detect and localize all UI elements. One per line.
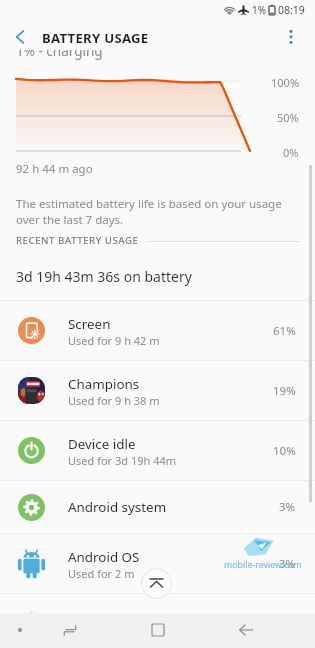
staticText: Device idle	[68, 435, 136, 453]
button[interactable]: More options	[277, 23, 305, 51]
button[interactable]: Recents	[143, 615, 173, 645]
staticText: RECENT BATTERY USAGE	[16, 234, 139, 247]
staticText: Screen	[68, 315, 111, 333]
button[interactable]: Hide keyboard	[5, 615, 35, 645]
staticText: Used for 3d 19h 44m	[68, 453, 177, 468]
staticText: 61%	[273, 323, 296, 339]
button[interactable]: Champions	[0, 361, 315, 420]
staticText: 19%	[273, 383, 296, 399]
staticText: 3%	[279, 499, 296, 515]
staticText: Champions	[68, 375, 140, 393]
staticText: 1%	[252, 3, 267, 17]
button[interactable]: Back	[6, 23, 34, 51]
staticText: 10%	[273, 443, 296, 459]
staticText: 1% - charging	[16, 42, 103, 60]
staticText: 92 h 44 m ago	[16, 161, 93, 177]
button[interactable]: Screen	[0, 301, 315, 360]
staticText: 3d 19h 43m 36s on battery	[16, 267, 192, 286]
staticText: Used for 9 h 38 m	[68, 393, 160, 408]
button[interactable]: Google Play services	[0, 594, 315, 646]
button[interactable]: Scroll to top	[141, 568, 172, 599]
staticText: Used for 2 m	[68, 566, 135, 581]
button[interactable]: Android OS	[0, 534, 315, 593]
button[interactable]: Back	[231, 615, 261, 645]
staticText: Google Play services	[68, 611, 197, 629]
staticText: 0%	[283, 145, 299, 160]
staticText: Android system	[68, 498, 167, 516]
staticText: BATTERY USAGE	[42, 29, 149, 47]
staticText: The estimated battery life is based on y…	[16, 196, 282, 227]
staticText: mobile-review.com	[224, 559, 302, 571]
button[interactable]: Split screen	[55, 615, 85, 645]
staticText: 3%	[279, 556, 296, 572]
button[interactable]: Android system	[0, 481, 315, 533]
staticText: 08:19	[278, 3, 305, 17]
button[interactable]: Device idle	[0, 421, 315, 480]
staticText: 100%	[271, 75, 300, 90]
staticText: Android OS	[68, 548, 140, 566]
staticText: 50%	[277, 110, 299, 125]
staticText: Used for 9 h 42 m	[68, 333, 160, 348]
